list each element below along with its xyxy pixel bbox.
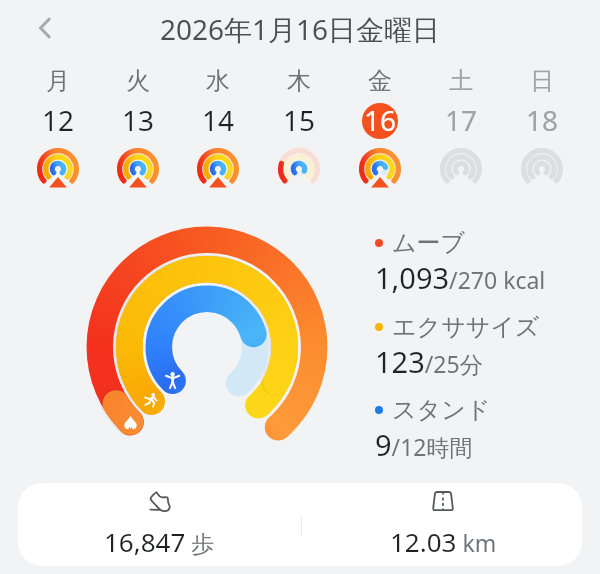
staticText: 18 bbox=[526, 101, 559, 137]
button[interactable]: 月 bbox=[18, 66, 98, 197]
staticText: 金 bbox=[368, 66, 392, 96]
staticText: 9/12時間 bbox=[375, 425, 473, 464]
button[interactable]: 火 bbox=[98, 66, 178, 197]
staticText: 17 bbox=[445, 101, 478, 137]
button[interactable]: ムーブ bbox=[375, 228, 546, 297]
staticText: 1,093/270 kcal bbox=[375, 258, 546, 297]
staticText: 14 bbox=[202, 101, 235, 137]
button[interactable]: 土 bbox=[420, 66, 501, 197]
staticText: 12.03 km bbox=[390, 524, 497, 559]
staticText: 火 bbox=[126, 66, 150, 96]
staticText: 16 bbox=[364, 101, 397, 137]
staticText: エクササイズ bbox=[392, 312, 540, 342]
staticText: 木 bbox=[287, 66, 311, 96]
button[interactable]: スタンド bbox=[375, 395, 491, 464]
button[interactable]: 水 bbox=[178, 66, 258, 197]
staticText: 日 bbox=[530, 66, 554, 96]
staticText: ムーブ bbox=[392, 228, 466, 258]
staticText: 土 bbox=[449, 66, 473, 96]
button[interactable]: 日 bbox=[501, 66, 582, 197]
button[interactable]: 木 bbox=[258, 66, 339, 197]
staticText: 2026年1月16日金曜日 bbox=[160, 10, 441, 48]
staticText: 15 bbox=[283, 101, 316, 137]
button[interactable]: Back bbox=[24, 7, 66, 49]
staticText: 月 bbox=[46, 66, 70, 96]
button[interactable]: エクササイズ bbox=[375, 312, 540, 381]
staticText: 123/25分 bbox=[375, 342, 483, 381]
button[interactable]: 16,847 歩 bbox=[18, 483, 301, 566]
staticText: 13 bbox=[122, 101, 155, 137]
staticText: 12 bbox=[42, 101, 75, 137]
button[interactable]: 金 bbox=[339, 66, 420, 197]
staticText: スタンド bbox=[392, 395, 491, 425]
button[interactable]: 12.03 km bbox=[306, 483, 580, 566]
staticText: 水 bbox=[206, 66, 230, 96]
staticText: 16,847 歩 bbox=[104, 524, 215, 559]
